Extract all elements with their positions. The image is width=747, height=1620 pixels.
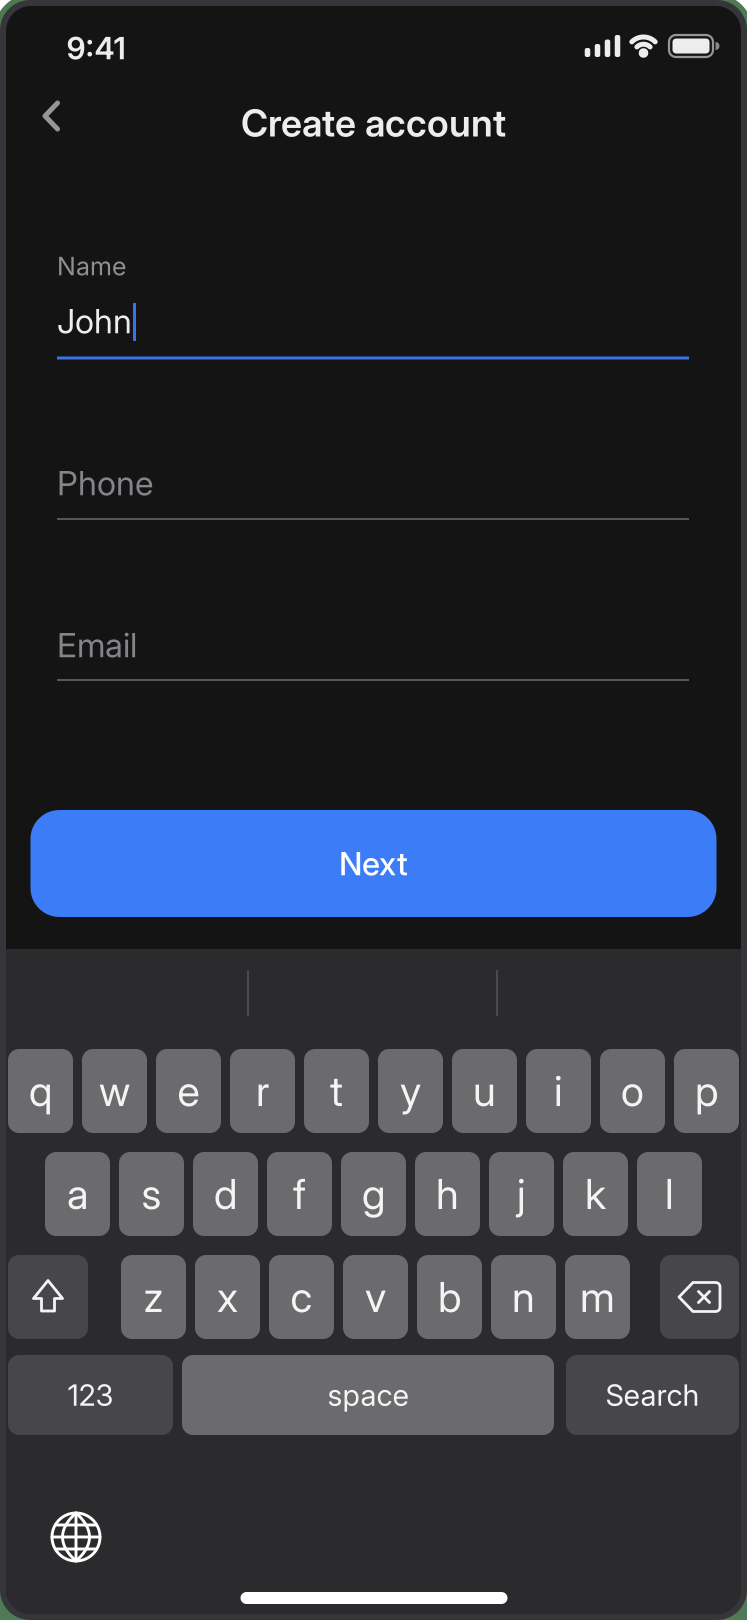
staticText: o [621,1067,644,1115]
staticText: Search [605,1378,699,1412]
button[interactable]: t [304,1049,369,1133]
staticText: n [512,1273,535,1321]
button[interactable]: o [600,1049,665,1133]
staticText: i [554,1067,563,1115]
staticText: Name [57,251,126,281]
staticText: u [473,1067,496,1115]
button[interactable]: b [417,1255,482,1339]
button[interactable]: e [156,1049,221,1133]
button[interactable]: s [119,1152,184,1236]
button[interactable]: q [8,1049,73,1133]
button[interactable] [660,1255,739,1339]
button[interactable]: z [121,1255,186,1339]
staticText: h [436,1170,459,1218]
button[interactable]: l [637,1152,702,1236]
staticText: Create account [241,101,506,145]
button[interactable]: space [182,1355,554,1435]
staticText: 123 [67,1378,113,1412]
staticText: Email [57,625,137,665]
button[interactable]: x [195,1255,260,1339]
button[interactable]: f [267,1152,332,1236]
button[interactable]: k [563,1152,628,1236]
button[interactable] [23,94,79,138]
button[interactable]: d [193,1152,258,1236]
staticText: t [330,1067,343,1115]
button[interactable]: j [489,1152,554,1236]
button[interactable]: Next [30,810,716,917]
staticText: w [99,1067,130,1115]
staticText: g [362,1170,385,1218]
button[interactable]: c [269,1255,334,1339]
staticText: x [217,1273,238,1321]
button[interactable]: g [341,1152,406,1236]
staticText: Next [339,845,408,882]
staticText: John [57,301,132,341]
staticText: q [29,1067,52,1115]
staticText: s [141,1170,161,1218]
staticText: z [143,1273,163,1321]
staticText: p [695,1067,718,1115]
button[interactable]: w [82,1049,147,1133]
staticText: k [585,1170,606,1218]
button[interactable] [46,1507,106,1567]
button[interactable]: 123 [8,1355,173,1435]
staticText: a [67,1170,88,1218]
button[interactable]: p [674,1049,739,1133]
staticText: m [580,1273,615,1321]
staticText: f [293,1170,306,1218]
staticText: c [290,1273,312,1321]
staticText: r [256,1067,269,1115]
staticText: v [365,1273,386,1321]
button[interactable]: r [230,1049,295,1133]
button[interactable]: v [343,1255,408,1339]
button[interactable]: m [565,1255,630,1339]
staticText: d [214,1170,237,1218]
button[interactable]: n [491,1255,556,1339]
staticText: y [400,1067,421,1115]
staticText: j [517,1170,526,1218]
button[interactable]: i [526,1049,591,1133]
button[interactable]: a [45,1152,110,1236]
staticText: b [438,1273,461,1321]
button[interactable]: Search [566,1355,739,1435]
staticText: e [177,1067,199,1115]
button[interactable]: h [415,1152,480,1236]
button[interactable]: u [452,1049,517,1133]
staticText: Phone [57,463,153,503]
button[interactable] [8,1255,88,1339]
staticText: space [327,1378,408,1412]
staticText: 9:41 [66,30,125,66]
button[interactable]: y [378,1049,443,1133]
staticText: l [665,1170,674,1218]
